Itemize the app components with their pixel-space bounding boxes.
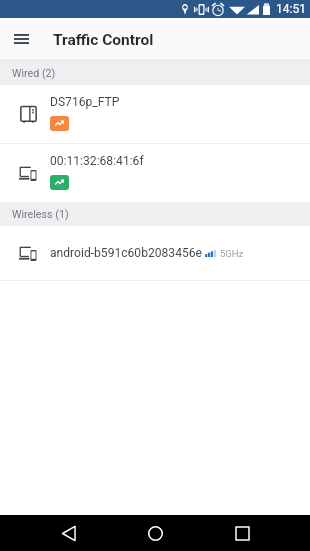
button[interactable]: Back: [51, 515, 87, 551]
staticText: 14:51: [276, 2, 306, 16]
button[interactable]: Home: [137, 515, 173, 551]
staticText: Traffic Control: [53, 31, 154, 49]
button[interactable]: Recent apps: [224, 515, 260, 551]
staticText: 00:11:32:68:41:6f: [50, 154, 144, 168]
staticText: android-b591c60b2083456e: [50, 246, 202, 260]
button[interactable]: android-b591c60b2083456e: [0, 226, 310, 280]
button[interactable]: Open navigation menu: [4, 23, 38, 57]
staticText: Wired (2): [12, 67, 56, 80]
staticText: DS716p_FTP: [50, 95, 120, 109]
staticText: 5GHz: [220, 248, 244, 259]
button[interactable]: 00:11:32:68:41:6f: [0, 144, 310, 202]
staticText: Wireless (1): [12, 208, 69, 221]
button[interactable]: DS716p_FTP: [0, 85, 310, 143]
